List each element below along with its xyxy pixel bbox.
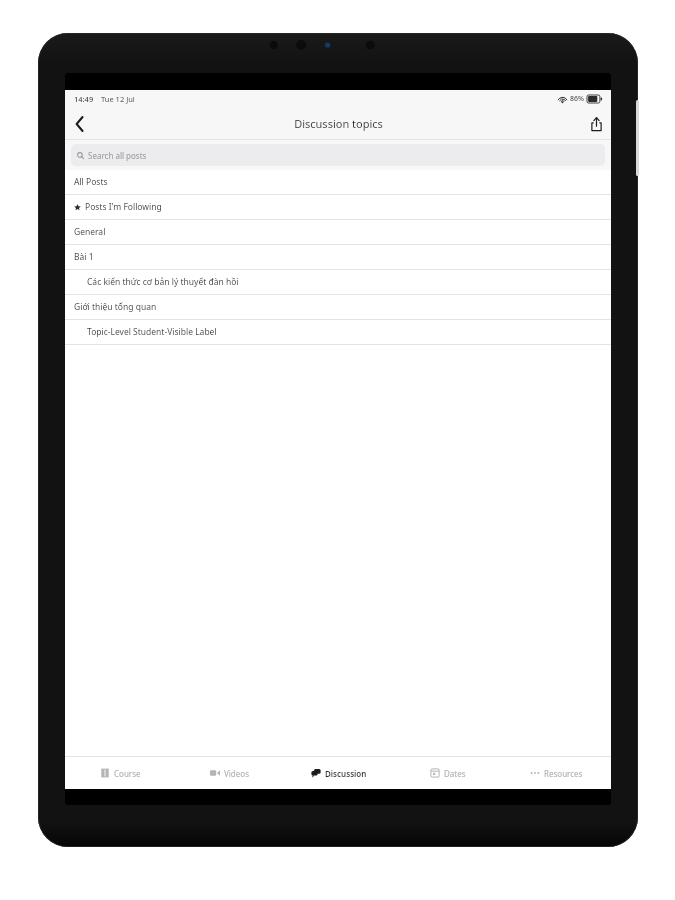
button[interactable]: Các kiến thức cơ bản lý thuyết đàn hồi	[65, 270, 611, 294]
staticText: Course	[114, 768, 141, 779]
button[interactable]: Back	[65, 109, 95, 139]
button[interactable]: Topic-Level Student-Visible Label	[65, 320, 611, 344]
staticText: Dates	[444, 768, 466, 779]
staticText: Search all posts	[88, 150, 147, 161]
button[interactable]: Share	[581, 109, 611, 139]
button[interactable]: Discussion	[284, 757, 393, 789]
button[interactable]: All Posts	[65, 170, 611, 194]
staticText: Topic-Level Student-Visible Label	[87, 326, 217, 338]
staticText: General	[74, 226, 106, 238]
staticText: 14:49	[74, 94, 94, 104]
button[interactable]: General	[65, 220, 611, 244]
staticText: Discussion topics	[294, 116, 383, 131]
staticText: Posts I'm Following	[85, 201, 162, 213]
staticText: Các kiến thức cơ bản lý thuyết đàn hồi	[87, 276, 239, 288]
staticText: 86%	[570, 94, 584, 104]
button[interactable]: Videos	[175, 757, 284, 789]
button[interactable]: Giới thiệu tổng quan	[65, 295, 611, 319]
staticText: Resources	[544, 768, 583, 779]
button[interactable]: Posts I'm Following	[65, 195, 611, 219]
button[interactable]: Bài 1	[65, 245, 611, 269]
button[interactable]: Resources	[502, 757, 611, 789]
staticText: Giới thiệu tổng quan	[74, 301, 157, 313]
staticText: All Posts	[74, 176, 108, 188]
staticText: Discussion	[325, 768, 367, 779]
button[interactable]: Course	[65, 757, 175, 789]
button[interactable]: Search all posts	[71, 144, 605, 166]
staticText: Videos	[224, 768, 249, 779]
staticText: Bài 1	[74, 251, 94, 263]
staticText: Tue 12 Jul	[101, 94, 135, 104]
button[interactable]: Dates	[393, 757, 502, 789]
